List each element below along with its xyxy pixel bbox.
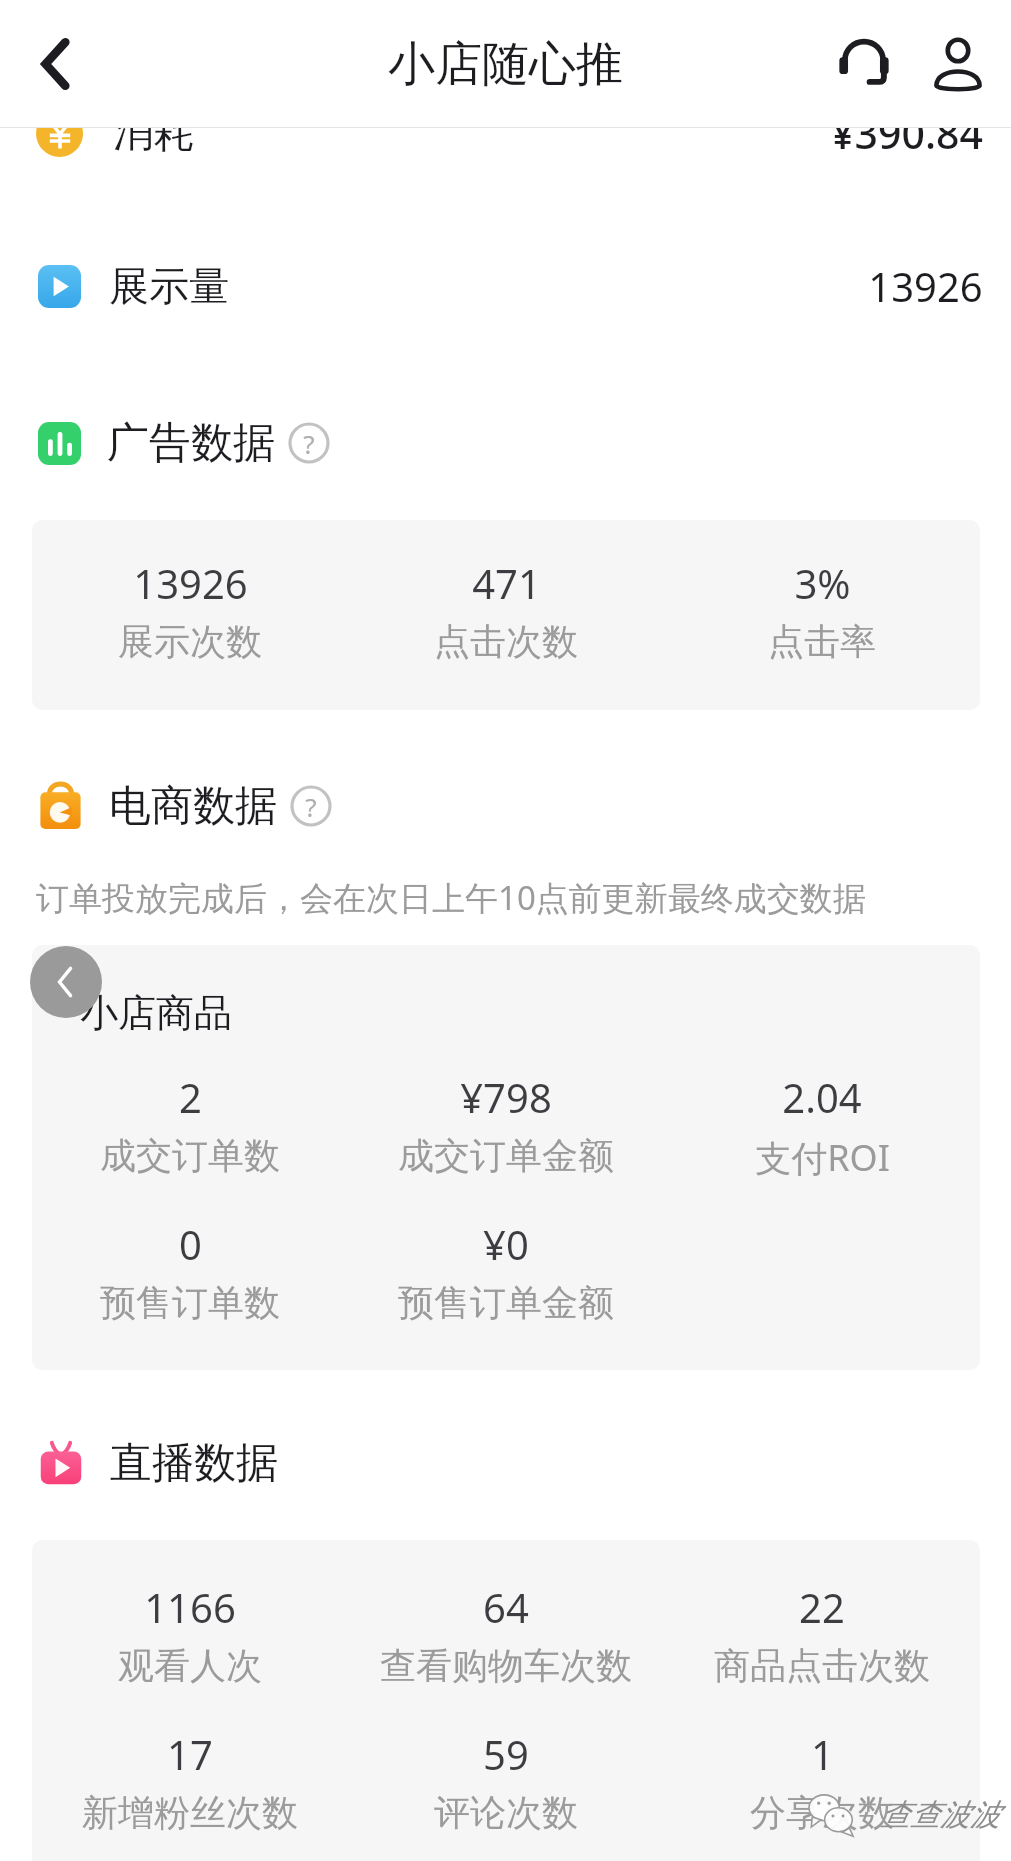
button[interactable]: Back <box>30 946 102 1018</box>
staticText: 2.04 <box>782 1070 862 1124</box>
staticText: ¥798 <box>460 1070 552 1124</box>
staticText: 小店随心推 <box>388 35 623 94</box>
staticText: 17 <box>167 1727 213 1781</box>
staticText: 电商数据 <box>109 780 277 833</box>
button[interactable]: Customer service <box>822 22 906 106</box>
button[interactable]: Profile <box>916 22 1000 106</box>
staticText: ? <box>305 789 317 824</box>
button[interactable]: Back <box>14 22 98 106</box>
staticText: 分享次数 <box>750 1790 894 1835</box>
staticText: 预售订单数 <box>100 1280 280 1325</box>
staticText: 0 <box>179 1217 202 1271</box>
staticText: 新增粉丝次数 <box>82 1790 298 1835</box>
staticText: 22 <box>799 1580 845 1634</box>
staticText: ¥390.84 <box>831 105 983 161</box>
staticText: 直播数据 <box>110 1437 278 1490</box>
staticText: 1166 <box>144 1580 236 1634</box>
staticText: 2 <box>179 1070 202 1124</box>
staticText: 成交订单数 <box>100 1133 280 1178</box>
staticText: 观看人次 <box>118 1643 262 1688</box>
staticText: 成交订单金额 <box>398 1133 614 1178</box>
staticText: 3% <box>794 556 851 610</box>
button[interactable]: Help <box>287 421 331 465</box>
staticText: 广告数据 <box>107 417 275 470</box>
staticText: 13926 <box>133 556 248 610</box>
staticText: 小店商品 <box>80 989 232 1037</box>
button[interactable]: Help <box>289 784 333 828</box>
staticText: 1 <box>811 1727 834 1781</box>
button[interactable]: 消耗 <box>0 97 1011 169</box>
staticText: 点击次数 <box>434 619 578 664</box>
staticText: 59 <box>483 1727 529 1781</box>
staticText: 展示次数 <box>118 619 262 664</box>
staticText: ? <box>303 426 315 461</box>
staticText: 展示量 <box>109 261 229 311</box>
staticText: 471 <box>472 556 541 610</box>
staticText: 支付ROI <box>755 1133 890 1182</box>
button[interactable]: 展示量 <box>0 243 1011 329</box>
staticText: ¥0 <box>483 1217 529 1271</box>
staticText: 订单投放完成后，会在次日上午10点前更新最终成交数据 <box>36 875 866 920</box>
staticText: 查看购物车次数 <box>380 1643 632 1688</box>
staticText: 预售订单金额 <box>398 1280 614 1325</box>
staticText: 评论次数 <box>434 1790 578 1835</box>
staticText: 点击率 <box>768 619 876 664</box>
staticText: 64 <box>483 1580 529 1634</box>
staticText: 消耗 <box>113 107 195 159</box>
staticText: 查查波波 <box>880 1796 1000 1834</box>
staticText: 商品点击次数 <box>714 1643 930 1688</box>
staticText: 13926 <box>868 259 983 313</box>
